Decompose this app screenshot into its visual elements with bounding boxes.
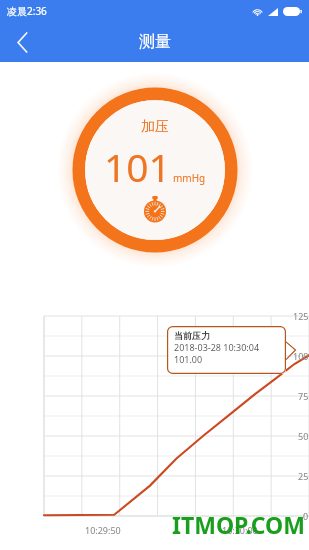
- staticText: 125: [293, 310, 309, 322]
- staticText: 101.00: [174, 353, 203, 365]
- button[interactable]: Back: [0, 22, 44, 62]
- staticText: 凌晨2:36: [7, 4, 47, 18]
- staticText: 测量: [139, 32, 171, 52]
- staticText: 25: [298, 470, 309, 482]
- staticText: 50: [298, 430, 309, 442]
- staticText: mmHg: [173, 171, 206, 185]
- staticText: 75: [298, 390, 309, 402]
- staticText: 加压: [141, 118, 169, 136]
- staticText: 2018-03-28 10:30:04: [174, 341, 260, 353]
- staticText: 100: [293, 350, 309, 362]
- staticText: 0: [303, 510, 309, 522]
- button[interactable]: 当前压力: [167, 326, 286, 374]
- staticText: 当前压力: [174, 330, 210, 341]
- staticText: 10:29:50: [85, 524, 121, 536]
- staticText: 10:30:00: [222, 524, 258, 536]
- staticText: ITMOP.COM: [172, 509, 305, 540]
- staticText: 101: [104, 140, 171, 193]
